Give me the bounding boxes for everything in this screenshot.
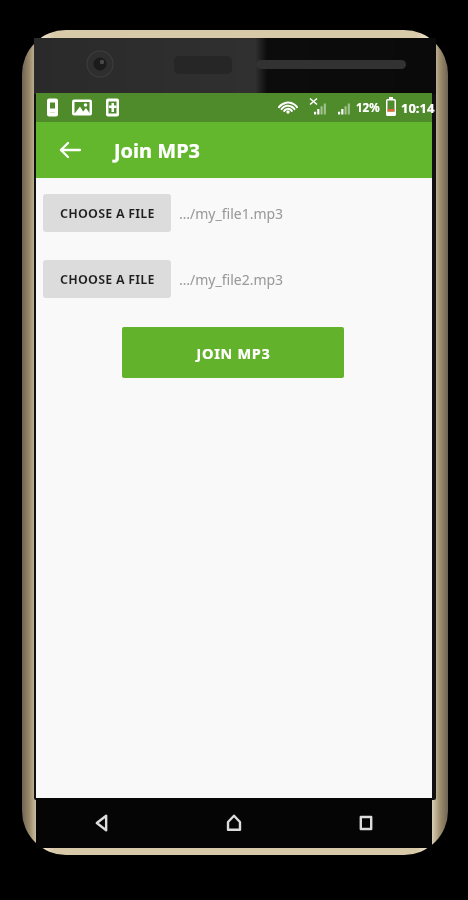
staticText: Join MP3 [114,137,201,164]
staticText: CHOOSE A FILE [60,271,155,288]
staticText: 12% [356,100,380,116]
button[interactable]: Home [168,798,300,848]
button[interactable]: CHOOSE A FILE [43,194,171,232]
button[interactable]: Recents [300,798,432,848]
staticText: JOIN MP3 [196,343,271,363]
staticText: …/my_file1.mp3 [179,204,284,223]
button[interactable]: CHOOSE A FILE [43,260,171,298]
button[interactable]: Back [36,798,168,848]
button[interactable]: Back [46,126,94,174]
staticText: …/my_file2.mp3 [179,270,284,289]
button[interactable]: JOIN MP3 [122,327,344,378]
staticText: 10:14 [401,99,435,117]
staticText: CHOOSE A FILE [60,205,155,222]
